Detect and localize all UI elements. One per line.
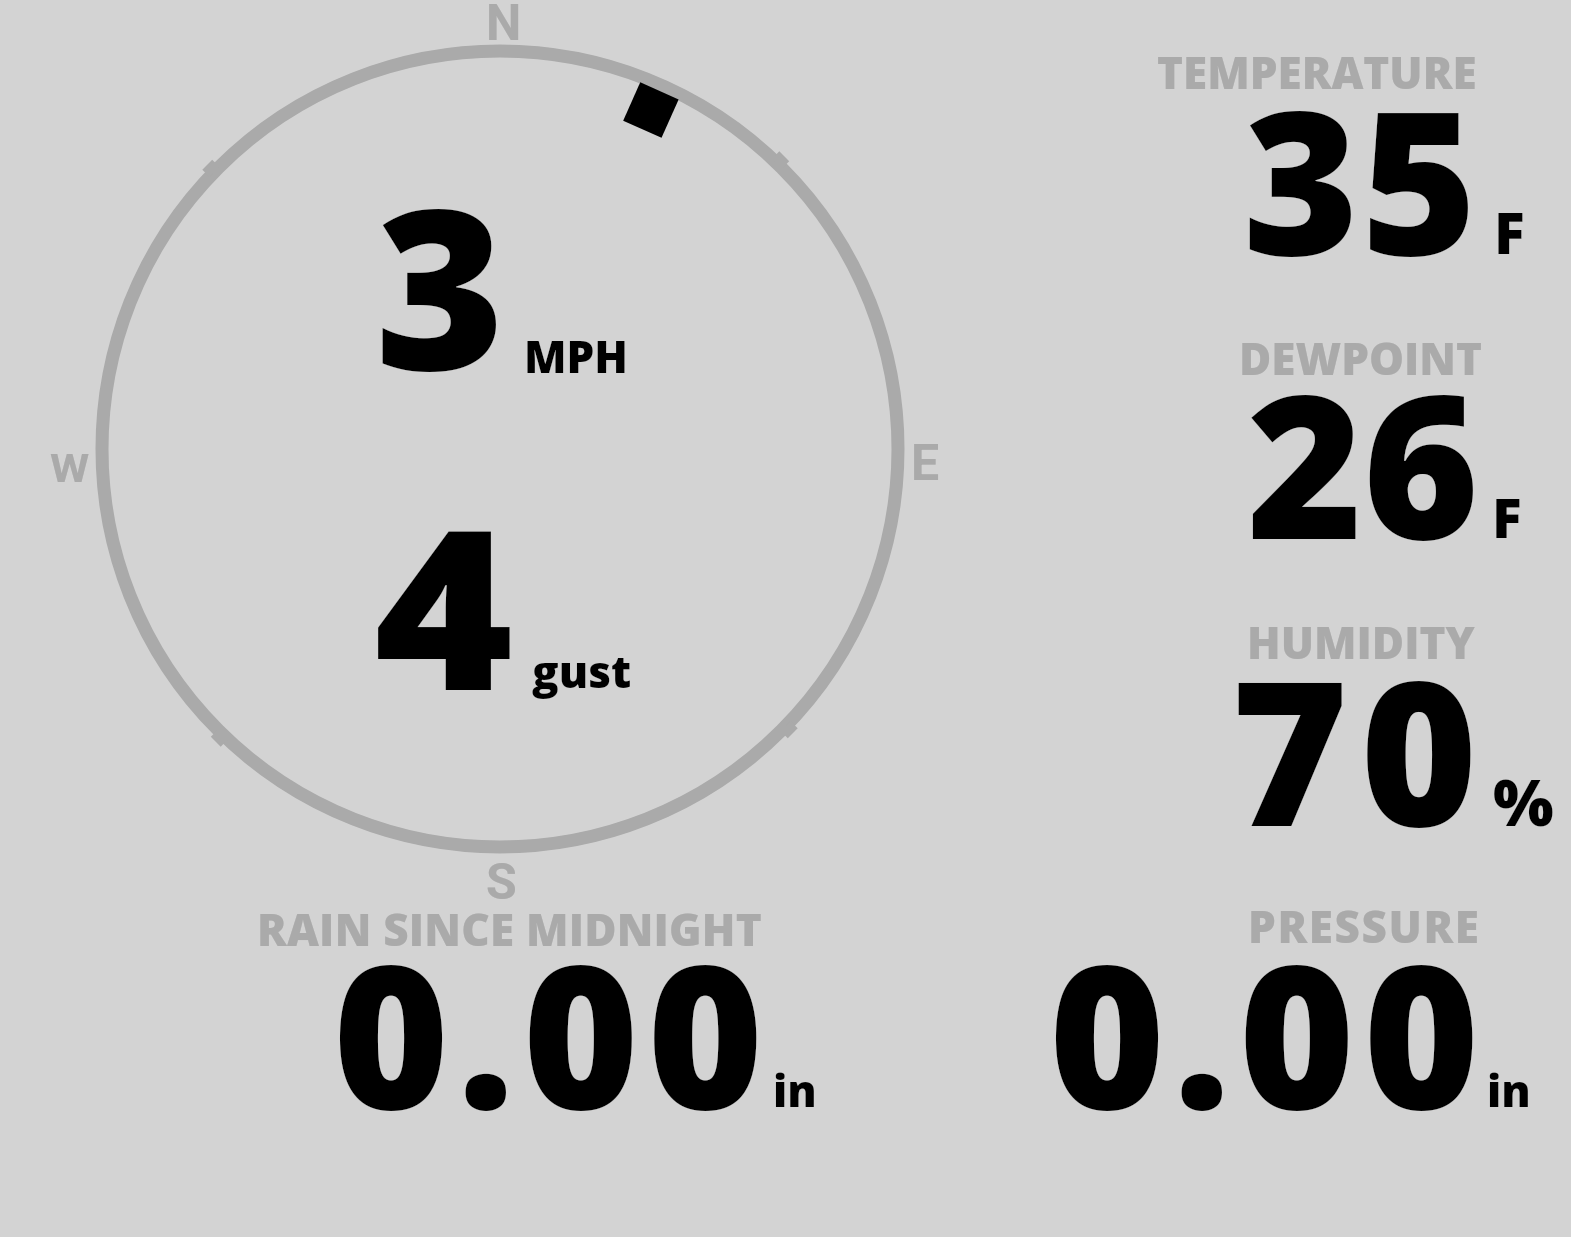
button[interactable]: Pressure 0.00 in — [960, 890, 1560, 1140]
staticText: F — [1492, 479, 1522, 554]
staticText: RAIN SINCE MIDNIGHT — [257, 899, 762, 959]
button[interactable]: Humidity 70 percent — [1000, 585, 1560, 845]
staticText: 35 — [1243, 43, 1480, 313]
staticText: N — [486, 0, 522, 53]
staticText: % — [1493, 758, 1554, 845]
staticText: 0.00 — [333, 897, 772, 1167]
staticText: S — [486, 853, 517, 912]
staticText: in — [1487, 1060, 1531, 1120]
staticText: in — [773, 1060, 817, 1120]
staticText: DEWPOINT — [1239, 328, 1483, 388]
staticText: PRESSURE — [1248, 896, 1481, 956]
staticText: 4 — [374, 453, 514, 755]
staticText: gust — [532, 641, 632, 701]
staticText: W — [50, 447, 90, 492]
button[interactable]: Dewpoint 26 F — [1000, 300, 1560, 560]
staticText: 70 — [1231, 612, 1490, 884]
staticText: MPH — [524, 326, 629, 386]
staticText: E — [911, 434, 940, 493]
staticText: 26 — [1247, 327, 1480, 597]
button[interactable]: Temperature 35 F — [1000, 30, 1560, 280]
button[interactable]: Wind 3 miles per hour, gusting 4 — [80, 30, 920, 870]
staticText: TEMPERATURE — [1157, 42, 1477, 102]
staticText: HUMIDITY — [1247, 612, 1475, 672]
staticText: 0.00 — [1049, 897, 1488, 1167]
button[interactable]: Rain since midnight 0.00 in — [180, 890, 880, 1140]
staticText: 3 — [375, 133, 506, 435]
staticText: F — [1494, 193, 1525, 271]
